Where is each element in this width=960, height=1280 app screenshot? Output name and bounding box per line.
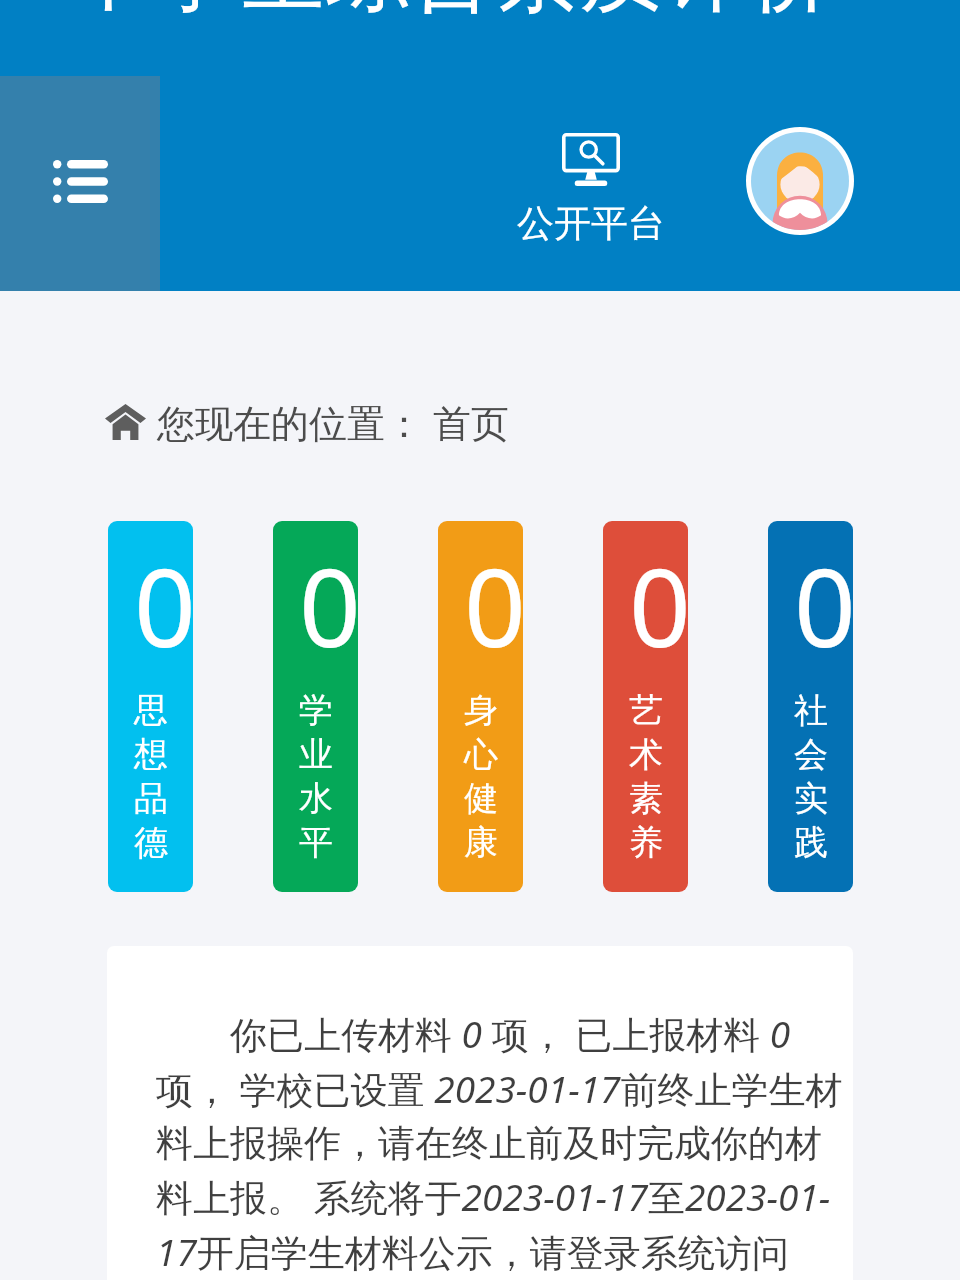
staticText: 思 <box>134 689 168 732</box>
staticText: 水 <box>299 777 333 820</box>
staticText: 品 <box>134 777 168 820</box>
staticText: 业 <box>299 733 333 776</box>
staticText: 0 <box>134 532 193 679</box>
button[interactable]: Menu <box>0 76 160 291</box>
button[interactable]: 0 <box>603 521 688 892</box>
staticText: 实 <box>794 777 828 820</box>
staticText: 康 <box>464 821 498 864</box>
staticText: 中学生综合素质评价 <box>69 0 834 27</box>
button[interactable]: 公开平台 <box>507 133 675 247</box>
button[interactable]: 0 <box>273 521 358 892</box>
staticText: 0 <box>464 532 523 679</box>
staticText: 平 <box>299 821 333 864</box>
button[interactable]: 0 <box>438 521 523 892</box>
staticText: 公开平台 <box>517 200 665 247</box>
staticText: 养 <box>629 821 663 864</box>
button[interactable]: 你已上传材料 0 项， 已上报材料 0 项， 学校已设置 2023-01-17前… <box>107 946 853 1280</box>
staticText: 0 <box>299 532 358 679</box>
staticText: 健 <box>464 777 498 820</box>
staticText: 会 <box>794 733 828 776</box>
button[interactable]: 0 <box>768 521 853 892</box>
staticText: 艺 <box>629 689 663 732</box>
staticText: 学 <box>299 689 333 732</box>
staticText: 您现在的位置： 首页 <box>157 396 509 448</box>
staticText: 心 <box>464 733 498 776</box>
staticText: 想 <box>134 733 168 776</box>
staticText: 素 <box>629 777 663 820</box>
staticText: 术 <box>629 733 663 776</box>
staticText: 0 <box>629 532 688 679</box>
staticText: 德 <box>134 821 168 864</box>
button[interactable]: 0 <box>108 521 193 892</box>
button[interactable]: Profile <box>746 127 854 235</box>
staticText: 践 <box>794 821 828 864</box>
staticText: 身 <box>464 689 498 732</box>
staticText: 你已上传材料 0 项， 已上报材料 0 项， 学校已设置 2023-01-17前… <box>156 1008 853 1277</box>
staticText: 0 <box>794 532 853 679</box>
staticText: 社 <box>794 689 828 732</box>
